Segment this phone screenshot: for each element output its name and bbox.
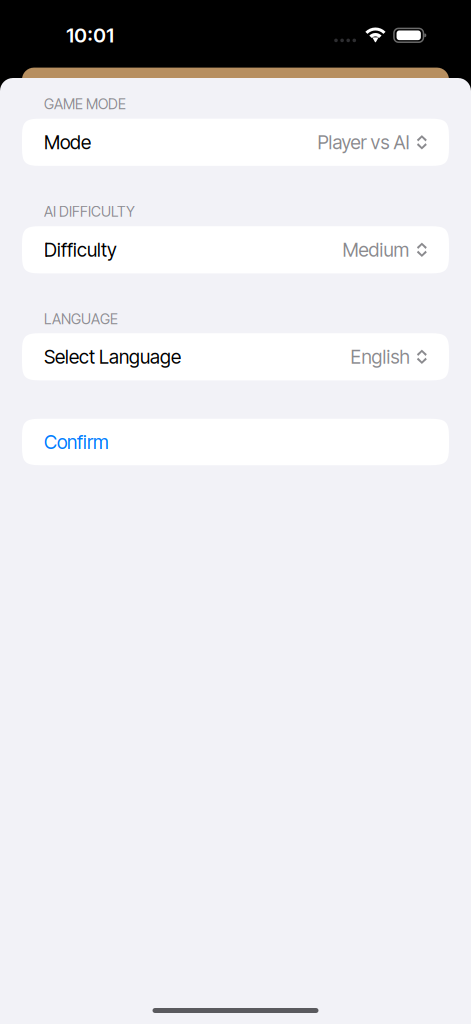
button[interactable]: Select Language [22,333,449,380]
button[interactable]: Confirm [22,419,449,465]
staticText: 10:01 [66,23,114,47]
button[interactable]: Mode [22,119,449,166]
staticText: LANGUAGE [44,310,118,328]
staticText: Difficulty [44,238,117,261]
staticText: Player vs AI [317,131,409,154]
staticText: Medium [342,238,409,261]
staticText: GAME MODE [44,95,126,113]
staticText: Confirm [44,430,109,454]
staticText: AI DIFFICULTY [44,203,135,220]
staticText: English [350,345,409,368]
staticText: Mode [44,131,91,154]
button[interactable]: Difficulty [22,226,449,273]
staticText: Select Language [44,345,181,368]
